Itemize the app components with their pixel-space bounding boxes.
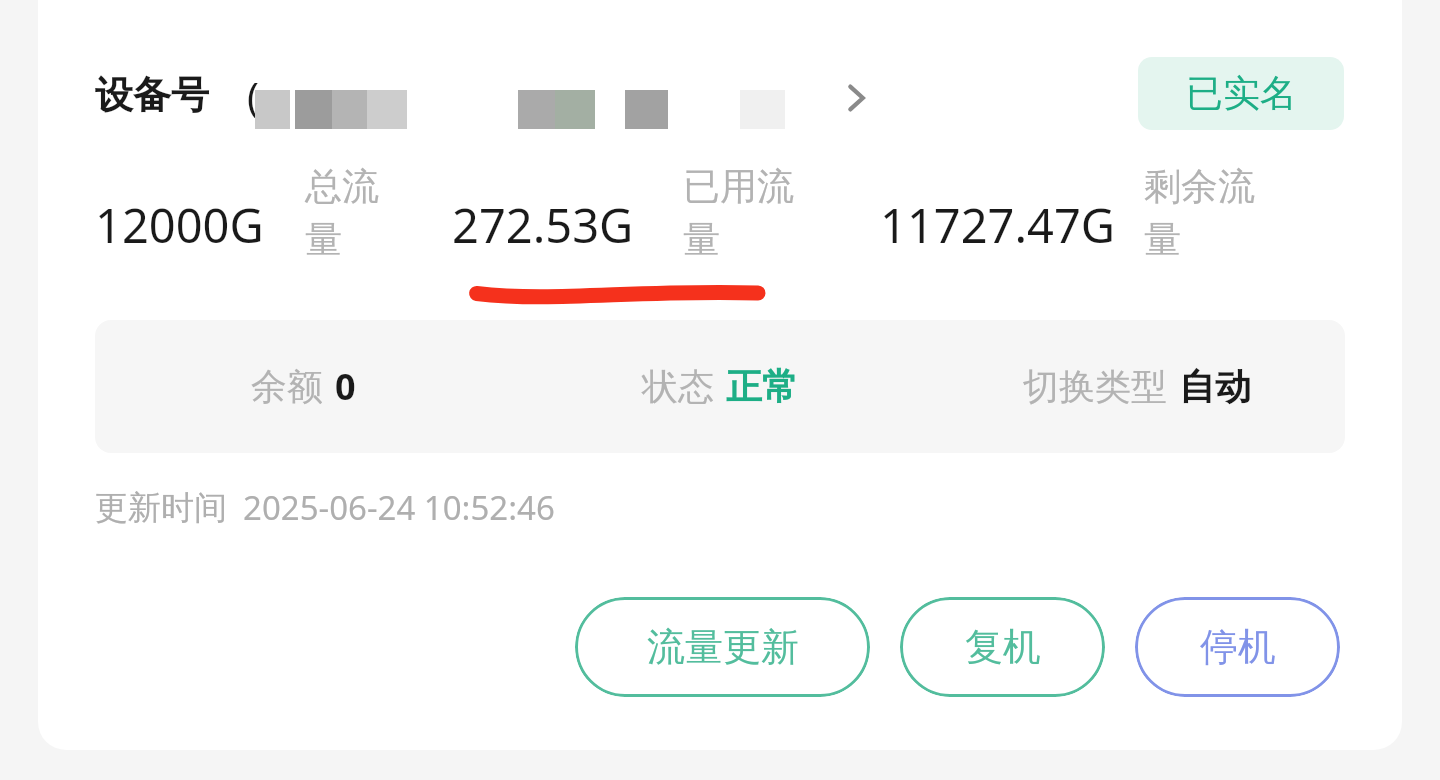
button[interactable]: 复机 xyxy=(900,597,1105,697)
staticText: 2025-06-24 10:52:46 xyxy=(243,485,555,530)
staticText: 11727.47G xyxy=(880,193,1115,257)
staticText: 流量更新 xyxy=(647,623,799,671)
button[interactable]: 已实名 xyxy=(1138,57,1344,130)
button[interactable]: 设备号 xyxy=(95,55,875,135)
staticText: ( xyxy=(247,69,259,123)
staticText: 设备号 xyxy=(95,71,209,119)
staticText: 已实名 xyxy=(1186,70,1297,117)
staticText: 状态 xyxy=(642,364,714,409)
staticText: 切换类型 xyxy=(1023,364,1167,409)
button[interactable]: 停机 xyxy=(1135,597,1340,697)
staticText: 12000G xyxy=(95,193,264,257)
staticText: 0 xyxy=(335,362,356,411)
staticText: 已用流 量 xyxy=(683,163,794,263)
staticText: 正常 xyxy=(726,364,798,409)
button[interactable]: 流量更新 xyxy=(575,597,870,697)
staticText: 剩余流 量 xyxy=(1144,163,1255,263)
staticText: 余额 xyxy=(251,364,323,409)
staticText: 停机 xyxy=(1200,623,1276,671)
staticText: 272.53G xyxy=(452,193,634,257)
staticText: 自动 xyxy=(1179,364,1251,409)
staticText: 更新时间 xyxy=(95,487,227,529)
staticText: 复机 xyxy=(965,623,1041,671)
staticText: 总流 量 xyxy=(305,163,379,263)
